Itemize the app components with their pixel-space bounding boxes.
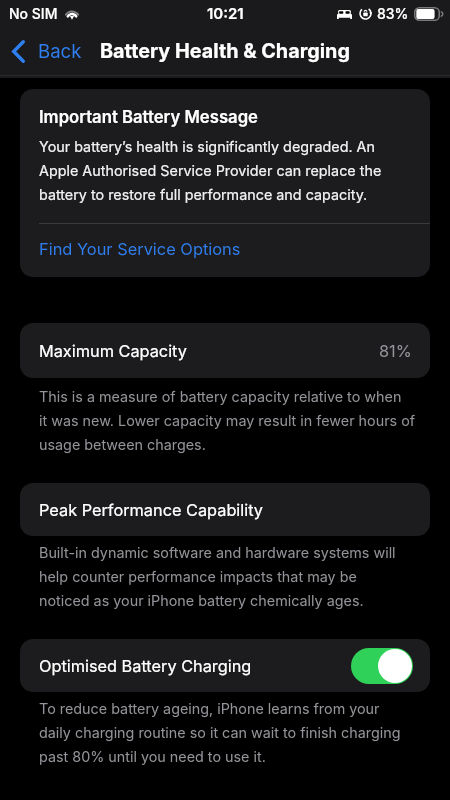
staticText: Built-in dynamic software and hardware s… <box>39 544 396 609</box>
staticText: Optimised Battery Charging <box>39 656 252 676</box>
staticText: Battery Health & Charging <box>100 39 350 63</box>
staticText: 10:21 <box>207 4 244 22</box>
staticText: Back <box>38 40 82 63</box>
button[interactable]: Find Your Service Options <box>20 224 430 277</box>
staticText: No SIM <box>9 5 58 22</box>
staticText: Maximum Capacity <box>39 341 187 361</box>
button[interactable]: Peak Performance Capability <box>20 483 430 536</box>
button[interactable]: Back <box>0 35 90 68</box>
staticText: 83% <box>377 5 409 22</box>
staticText: This is a measure of battery capacity re… <box>39 388 416 453</box>
staticText: Important Battery Message <box>39 107 258 127</box>
staticText: 81% <box>379 341 412 361</box>
button[interactable]: Optimised Battery Charging toggle <box>351 648 413 684</box>
staticText: Peak Performance Capability <box>39 500 264 520</box>
staticText: Your battery’s health is significantly d… <box>39 138 382 203</box>
staticText: To reduce battery ageing, iPhone learns … <box>39 700 401 765</box>
button[interactable]: Maximum Capacity <box>20 323 430 378</box>
staticText: Find Your Service Options <box>39 239 241 259</box>
